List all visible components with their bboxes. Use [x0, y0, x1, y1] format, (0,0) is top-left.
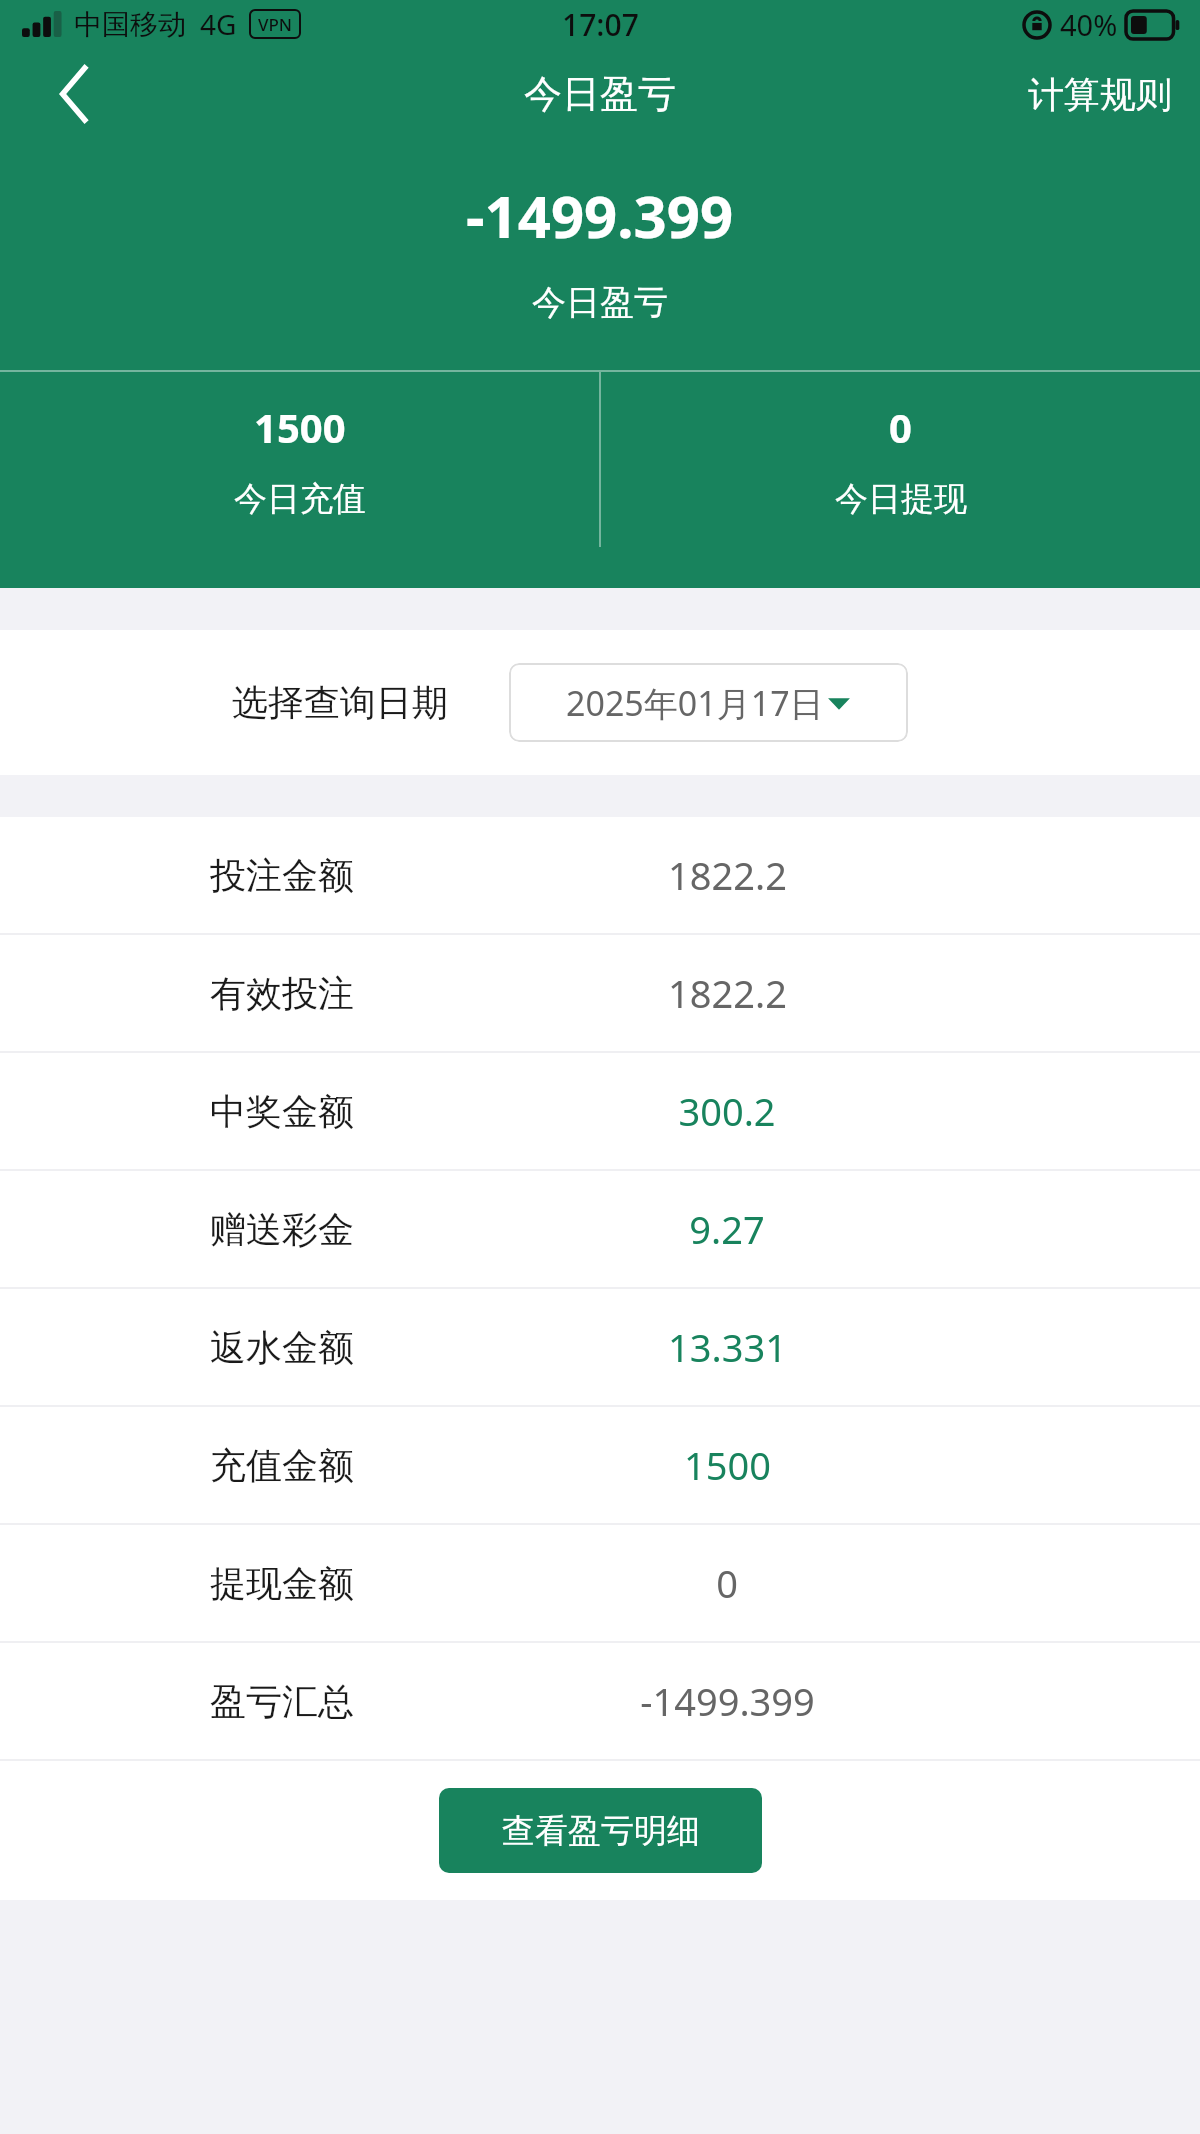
staticText: 选择查询日期 — [232, 680, 448, 725]
staticText: 300.2 — [678, 1085, 776, 1137]
staticText: 今日盈亏 — [532, 281, 668, 324]
button[interactable]: 1500 — [0, 372, 599, 547]
staticText: 赠送彩金 — [210, 1207, 354, 1252]
staticText: 计算规则 — [1028, 72, 1172, 117]
button[interactable]: 投注金额 — [0, 817, 1200, 933]
button[interactable]: 有效投注 — [0, 935, 1200, 1051]
staticText: VPN — [258, 13, 293, 36]
staticText: 17:07 — [562, 4, 639, 45]
staticText: 1500 — [254, 400, 346, 454]
staticText: 有效投注 — [210, 971, 354, 1016]
button[interactable]: 充值金额 — [0, 1407, 1200, 1523]
staticText: 2025年01月17日 — [566, 680, 824, 726]
staticText: 中国移动 — [74, 7, 186, 42]
staticText: 今日盈亏 — [524, 70, 676, 118]
staticText: 返水金额 — [210, 1325, 354, 1370]
staticText: 中奖金额 — [210, 1089, 354, 1134]
staticText: 充值金额 — [210, 1443, 354, 1488]
staticText: 40% — [1060, 5, 1118, 44]
staticText: 提现金额 — [210, 1561, 354, 1606]
staticText: 查看盈亏明细 — [502, 1810, 700, 1852]
button[interactable]: 选择查询日期 — [0, 630, 1200, 775]
button[interactable]: Back — [28, 48, 120, 140]
staticText: 4G — [200, 5, 237, 43]
button[interactable]: 查看盈亏明细 — [439, 1788, 762, 1873]
staticText: 1822.2 — [668, 849, 787, 901]
button[interactable]: 计算规则 — [1020, 62, 1180, 127]
button[interactable]: 0 — [601, 372, 1200, 547]
staticText: 盈亏汇总 — [210, 1679, 354, 1724]
staticText: 0 — [889, 400, 912, 454]
button[interactable]: 中奖金额 — [0, 1053, 1200, 1169]
staticText: 1500 — [684, 1439, 771, 1491]
staticText: -1499.399 — [466, 176, 734, 255]
staticText: 13.331 — [668, 1321, 787, 1373]
button[interactable]: 返水金额 — [0, 1289, 1200, 1405]
button[interactable]: 提现金额 — [0, 1525, 1200, 1641]
staticText: 今日充值 — [234, 478, 366, 520]
staticText: 0 — [716, 1557, 738, 1609]
staticText: 投注金额 — [210, 853, 354, 898]
button[interactable]: 赠送彩金 — [0, 1171, 1200, 1287]
button[interactable]: 盈亏汇总 — [0, 1643, 1200, 1759]
staticText: -1499.399 — [640, 1675, 815, 1727]
staticText: 9.27 — [689, 1203, 765, 1255]
staticText: 1822.2 — [668, 967, 787, 1019]
staticText: 今日提现 — [835, 478, 967, 520]
button[interactable]: 2025年01月17日 — [509, 663, 908, 742]
